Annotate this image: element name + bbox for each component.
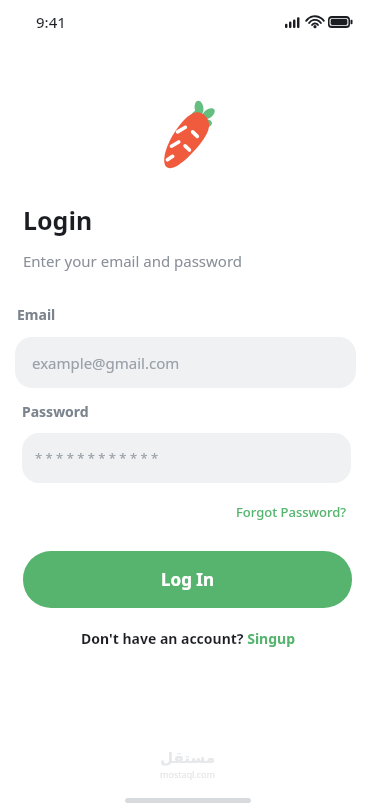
staticText: Forgot Password?: [236, 503, 347, 521]
staticText: example@gmail.com: [32, 353, 180, 373]
button[interactable]: example@gmail.com: [15, 337, 356, 388]
staticText: مستقل: [160, 749, 215, 766]
staticText: Email: [17, 305, 56, 324]
staticText: Login: [23, 203, 93, 237]
button[interactable]: Log In: [23, 551, 352, 608]
button[interactable]: * * * * * * * * * * * *: [22, 433, 351, 483]
staticText: Password: [22, 402, 89, 421]
staticText: Log In: [161, 568, 214, 591]
staticText: mostaql.com: [160, 768, 215, 780]
button[interactable]: Don't have an account? Singup: [78, 626, 298, 651]
staticText: Enter your email and password: [23, 251, 243, 271]
button[interactable]: Forgot Password?: [232, 499, 351, 525]
staticText: Don't have an account? Singup: [81, 629, 295, 648]
staticText: * * * * * * * * * * * *: [35, 449, 159, 467]
staticText: 9:41: [36, 12, 66, 32]
